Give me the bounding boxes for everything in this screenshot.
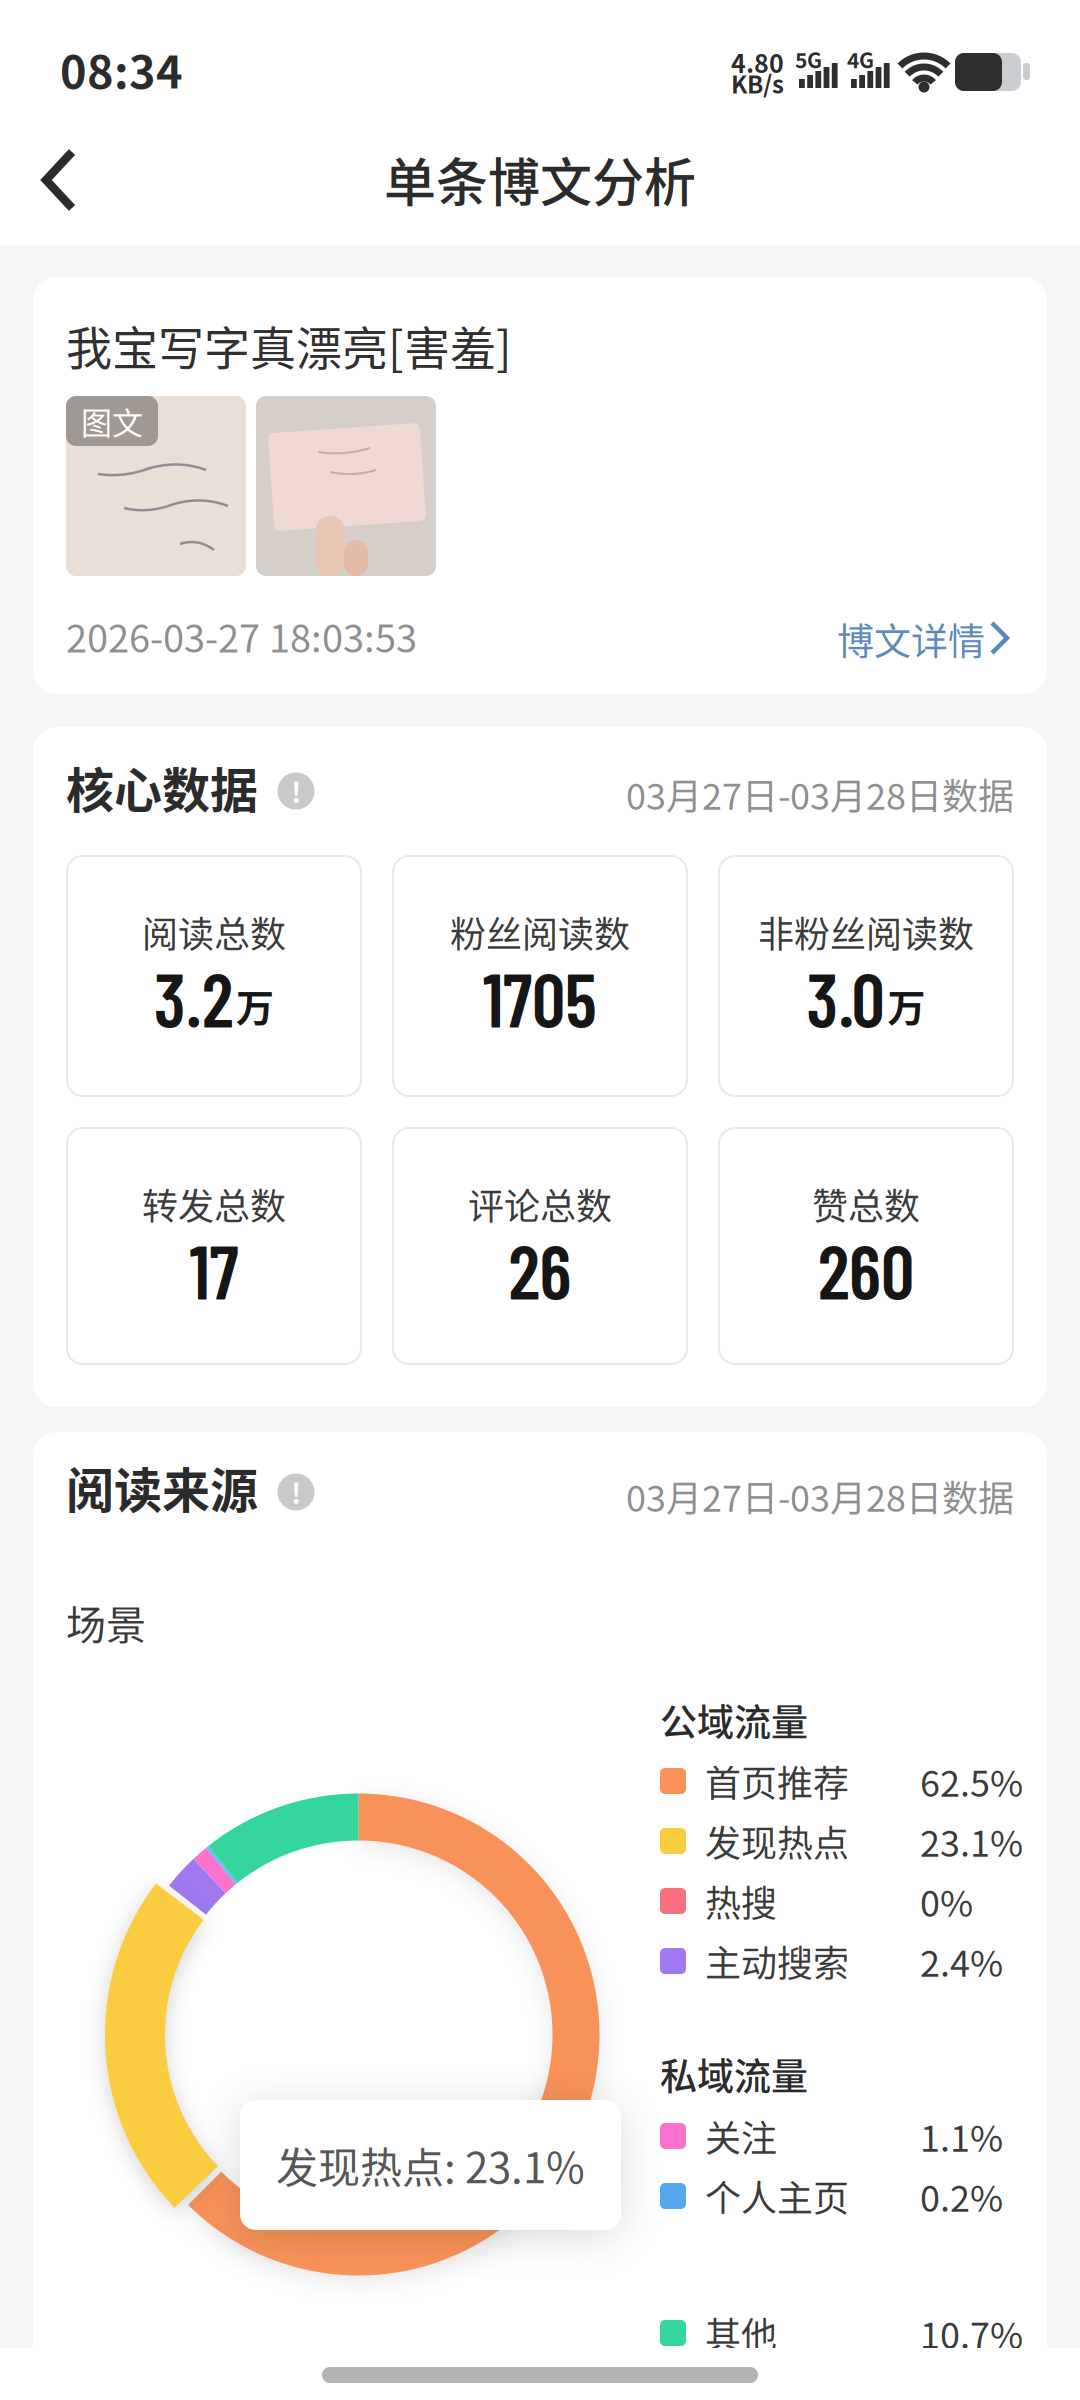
button[interactable]: 说明: [0, 0, 1080, 2400]
staticText: 23.1%: [920, 1815, 1023, 1867]
staticText: 个人主页: [705, 2170, 849, 2222]
staticText: 26: [508, 1226, 571, 1314]
staticText: 博文详情: [837, 612, 985, 666]
staticText: 260: [818, 1226, 914, 1314]
staticText: KB/s: [731, 66, 784, 100]
staticText: 1.1%: [920, 2110, 1003, 2162]
staticText: 公域流量: [660, 1693, 808, 1747]
staticText: 首页推荐: [705, 1755, 849, 1807]
staticText: 3.0: [806, 954, 884, 1042]
staticText: 发现热点: 23.1%: [276, 2135, 585, 2195]
staticText: 发现热点: [705, 1815, 849, 1867]
staticText: 非粉丝阅读数: [758, 906, 974, 958]
staticText: 关注: [705, 2110, 777, 2162]
staticText: 4G: [847, 44, 874, 74]
button[interactable]: 图文图片1: [0, 0, 1080, 2400]
staticText: 3.2: [154, 954, 233, 1042]
staticText: 2.4%: [920, 1935, 1003, 1987]
staticText: 阅读总数: [142, 906, 286, 958]
staticText: 03月27日-03月28日数据: [626, 1470, 1014, 1522]
staticText: 私域流量: [660, 2047, 808, 2101]
button[interactable]: 博文详情: [0, 0, 1080, 2400]
staticText: 主动搜索: [705, 1935, 849, 1987]
button[interactable]: 图文图片2: [0, 0, 1080, 2400]
staticText: 热搜: [705, 1875, 777, 1927]
staticText: 评论总数: [468, 1178, 612, 1230]
staticText: 万: [236, 977, 274, 1032]
staticText: 我宝写字真漂亮[害羞]: [66, 312, 512, 378]
staticText: 赞总数: [812, 1178, 920, 1230]
staticText: 1705: [483, 954, 597, 1042]
staticText: 核心数据: [66, 752, 258, 822]
staticText: !: [291, 771, 301, 811]
staticText: 08:34: [60, 36, 183, 102]
staticText: 5G: [795, 44, 822, 74]
staticText: 4.80: [731, 44, 784, 80]
staticText: 其他: [705, 2307, 777, 2359]
staticText: 粉丝阅读数: [450, 906, 630, 958]
button[interactable]: Back: [0, 0, 1080, 2400]
staticText: 转发总数: [142, 1178, 286, 1230]
staticText: 阅读来源: [66, 1452, 258, 1522]
staticText: 03月27日-03月28日数据: [626, 768, 1014, 820]
button[interactable]: 说明: [0, 0, 1080, 2400]
staticText: !: [291, 1472, 301, 1512]
staticText: 0%: [920, 1875, 973, 1927]
staticText: 单条博文分析: [384, 141, 696, 217]
staticText: 10.7%: [920, 2307, 1023, 2359]
staticText: 62.5%: [920, 1755, 1023, 1807]
staticText: 17: [189, 1226, 238, 1314]
staticText: 2026-03-27 18:03:53: [66, 608, 417, 663]
staticText: 场景: [66, 1593, 146, 1651]
staticText: 0.2%: [920, 2170, 1003, 2222]
staticText: 万: [887, 977, 925, 1032]
staticText: 图文: [81, 399, 143, 443]
